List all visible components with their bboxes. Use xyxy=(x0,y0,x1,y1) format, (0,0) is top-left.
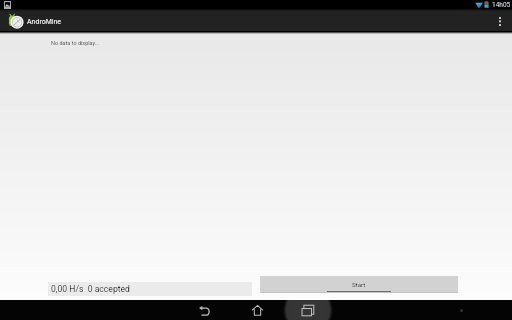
button[interactable]: Home xyxy=(245,300,269,320)
staticText: Start xyxy=(352,281,366,288)
staticText: 0,00 H/s 0 accepted xyxy=(51,284,130,294)
staticText: No data to display... xyxy=(51,40,100,46)
staticText: AndroMine xyxy=(27,18,62,26)
button[interactable]: Back xyxy=(192,300,216,320)
staticText: 14h05 xyxy=(492,1,511,9)
button[interactable]: More options xyxy=(489,11,510,31)
button[interactable]: Recent apps xyxy=(295,300,319,320)
button[interactable]: Start xyxy=(260,276,458,293)
